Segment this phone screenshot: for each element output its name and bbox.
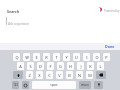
other: Shift [17, 74, 20, 77]
button[interactable]: E [33, 53, 40, 61]
button[interactable]: C [46, 71, 53, 79]
button[interactable]: O [93, 53, 100, 61]
button[interactable]: F [47, 62, 54, 70]
button[interactable]: S [27, 62, 34, 70]
button[interactable]: A [17, 62, 24, 70]
staticText: D [39, 64, 42, 69]
button[interactable]: Search [7, 9, 20, 14]
other: Backspace [99, 73, 103, 77]
button[interactable]: Z [26, 71, 33, 79]
staticText: G [59, 64, 62, 69]
staticText: F [49, 64, 52, 69]
button[interactable]: T [53, 53, 60, 61]
button[interactable]: J [77, 62, 84, 70]
staticText: Powered by AI [104, 9, 120, 13]
staticText: P [105, 55, 108, 60]
button[interactable]: N [76, 71, 83, 79]
button[interactable]: B [66, 71, 73, 79]
button[interactable]: L [97, 62, 104, 70]
button[interactable]: M [86, 71, 93, 79]
button[interactable]: Microphone [94, 81, 103, 89]
button[interactable]: P [103, 53, 110, 61]
staticText: O [95, 55, 99, 60]
button[interactable]: R [43, 53, 50, 61]
button[interactable]: D [37, 62, 44, 70]
staticText: Done [105, 44, 115, 49]
staticText: C [48, 73, 51, 78]
button[interactable]: K [87, 62, 94, 70]
staticText: R [45, 55, 48, 60]
button[interactable]: Done [105, 44, 115, 49]
staticText: W [25, 55, 29, 60]
button[interactable]: V [56, 71, 63, 79]
staticText: I [86, 55, 88, 60]
button[interactable]: G [57, 62, 64, 70]
staticText: K [89, 64, 92, 69]
staticText: Z [28, 73, 31, 78]
button[interactable]: X [36, 71, 43, 79]
staticText: 123 [13, 83, 18, 87]
staticText: X [38, 73, 41, 78]
other: Microphone [97, 83, 101, 87]
staticText: T [55, 55, 58, 60]
staticText: S [29, 64, 32, 69]
staticText: L [99, 64, 102, 69]
button[interactable]: 123 [12, 81, 19, 89]
button[interactable]: U [73, 53, 80, 61]
button[interactable]: Q [13, 53, 20, 61]
button[interactable]: W [23, 53, 30, 61]
staticText: Y [65, 55, 68, 60]
button[interactable]: space [32, 81, 76, 89]
staticText: B [68, 73, 71, 78]
button[interactable]: Y [63, 53, 70, 61]
staticText: A [19, 64, 22, 69]
staticText: Q [15, 55, 19, 60]
staticText: U [75, 55, 78, 60]
other: Emoji [24, 84, 27, 87]
staticText: E [35, 55, 38, 60]
staticText: space [50, 83, 58, 87]
button[interactable]: return [79, 81, 91, 89]
button[interactable]: Shift [13, 71, 23, 79]
staticText: V [58, 73, 61, 78]
staticText: return [81, 83, 89, 87]
button[interactable]: H [67, 62, 74, 70]
staticText: M [88, 73, 92, 78]
button[interactable]: Emoji [22, 81, 29, 89]
button[interactable]: Backspace [96, 71, 106, 79]
staticText: J [80, 64, 82, 69]
staticText: N [78, 73, 81, 78]
staticText: Ask a question [8, 22, 30, 26]
button[interactable]: I [83, 53, 90, 61]
staticText: H [69, 64, 72, 69]
